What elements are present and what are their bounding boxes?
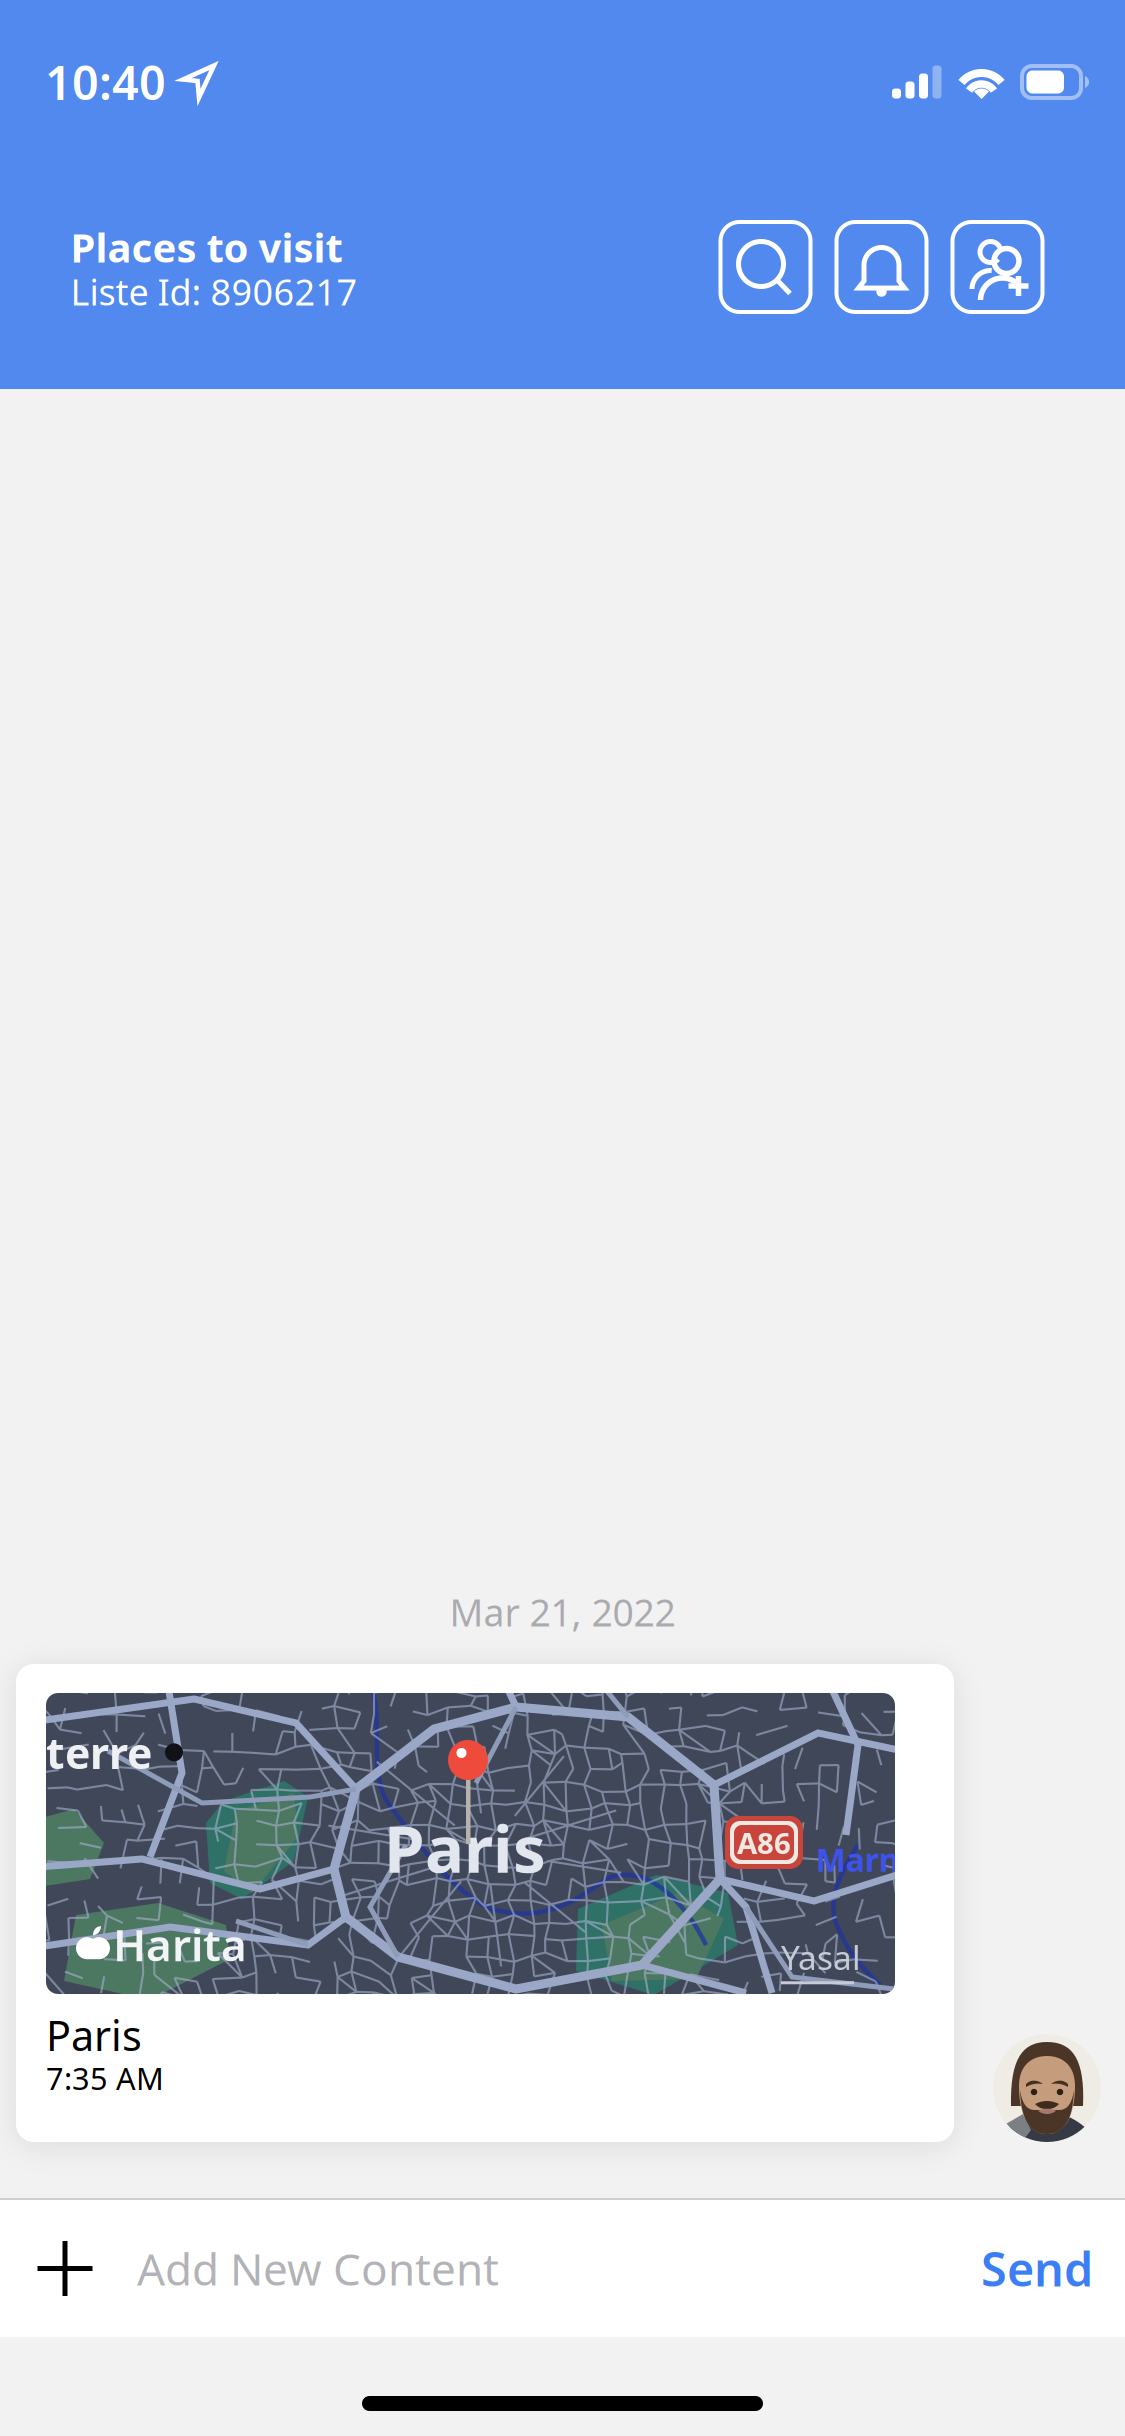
staticText: Yasal [781, 1935, 861, 1979]
button[interactable]: Search [718, 220, 812, 314]
staticText: Paris [384, 1804, 546, 1891]
staticText: Harita [113, 1915, 247, 1973]
staticText: A86 [737, 1823, 791, 1862]
button[interactable]: Send [981, 2200, 1093, 2337]
staticText: 7:35 AM [46, 2058, 164, 2098]
staticText: 10:40 [45, 51, 166, 113]
staticText: Paris [46, 2008, 142, 2062]
staticText: Marn [815, 1838, 899, 1880]
staticText: Places to visit [70, 220, 342, 273]
staticText: Add New Content [137, 2239, 499, 2298]
staticText: Send [981, 2237, 1093, 2299]
button[interactable]: Add attachment [35, 2200, 137, 2337]
button[interactable]: Notifications [834, 220, 928, 314]
staticText: terre [46, 1724, 152, 1781]
button[interactable]: Add people [950, 220, 1044, 314]
button[interactable]: terre [16, 1664, 954, 2142]
staticText: Mar 21, 2022 [449, 1587, 675, 1637]
staticText: Liste Id: 8906217 [70, 268, 357, 315]
